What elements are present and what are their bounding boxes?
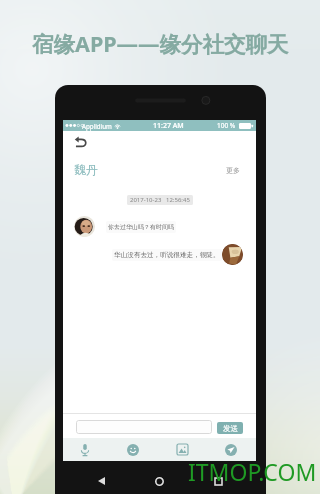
button[interactable]: 发送: [217, 422, 243, 434]
staticText: Applidium: [82, 122, 112, 130]
staticText: 2017-10-23 12:56:45: [130, 196, 190, 204]
button[interactable]: Send: [208, 438, 254, 461]
staticText: 你去过华山吗？有时间吗: [108, 223, 174, 231]
staticText: 魏丹: [74, 162, 98, 177]
button[interactable]: Back: [70, 132, 90, 152]
staticText: 华山没有去过，听说很难走，很陡。: [114, 251, 220, 259]
button[interactable]: 更多: [224, 164, 242, 177]
button[interactable]: Back: [88, 468, 114, 494]
staticText: 发送: [223, 424, 238, 433]
button[interactable]: Message input: [76, 420, 212, 434]
staticText: 宿缘APP——缘分社交聊天: [32, 29, 289, 58]
staticText: 100 %: [217, 121, 236, 130]
button[interactable]: Home: [146, 468, 172, 494]
staticText: 11:27 AM: [153, 121, 184, 131]
button[interactable]: Recent apps: [205, 468, 231, 494]
button[interactable]: Voice message: [62, 438, 108, 461]
button[interactable]: Send photo: [159, 438, 205, 461]
staticText: 更多: [226, 166, 240, 175]
button[interactable]: Emoji: [110, 438, 156, 461]
staticText: ITMOP.COM: [188, 456, 317, 487]
